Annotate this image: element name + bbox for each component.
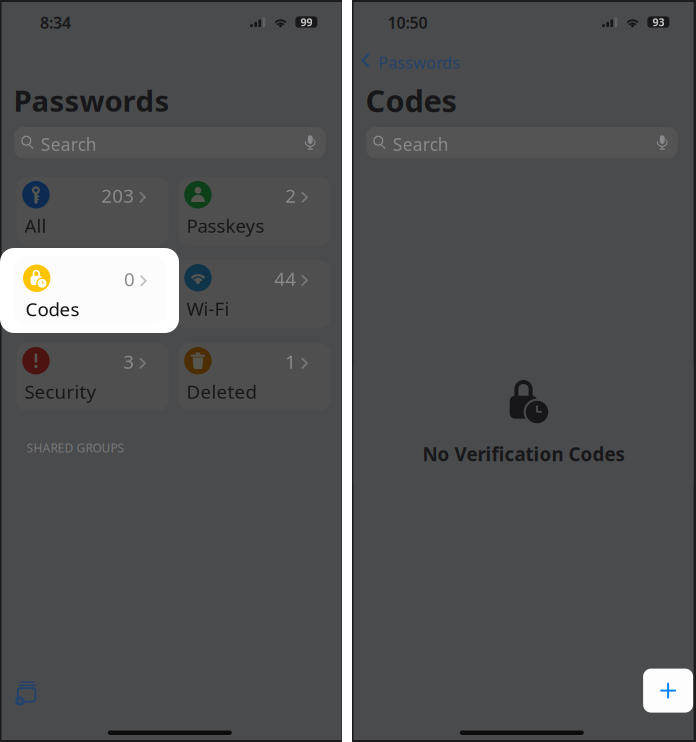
button[interactable]: New shared group xyxy=(15,679,45,709)
staticText: No Verification Codes xyxy=(423,442,625,466)
button[interactable]: 44 xyxy=(179,260,331,328)
staticText: Security xyxy=(25,379,97,404)
staticText: 10:50 xyxy=(388,12,428,33)
staticText: Deleted xyxy=(187,379,257,404)
staticText: Passwords xyxy=(14,81,170,120)
staticText: Passwords xyxy=(378,52,460,73)
staticText: Search xyxy=(41,133,97,156)
button[interactable]: 203 xyxy=(17,177,169,245)
staticText: Search xyxy=(393,133,449,156)
staticText: 44 xyxy=(274,266,296,291)
staticText: Wi-Fi xyxy=(187,296,230,321)
staticText: Passkeys xyxy=(187,213,265,238)
button[interactable]: 0 xyxy=(13,256,165,324)
staticText: 1 xyxy=(285,349,296,374)
staticText: 2 xyxy=(285,183,296,208)
button[interactable]: 1 xyxy=(179,343,331,411)
staticText: 8:34 xyxy=(40,12,71,33)
staticText: All xyxy=(25,213,47,238)
button[interactable]: 2 xyxy=(179,177,331,245)
staticText: 99 xyxy=(300,15,312,29)
button[interactable]: Passwords xyxy=(361,52,471,74)
button[interactable]: Add verification code xyxy=(643,669,693,713)
staticText: 203 xyxy=(101,183,134,208)
staticText: Codes xyxy=(366,80,457,121)
button[interactable]: 3 xyxy=(17,343,169,411)
staticText: 0 xyxy=(124,267,135,291)
staticText: 3 xyxy=(123,349,134,374)
staticText: Codes xyxy=(25,296,79,321)
staticText: 93 xyxy=(652,15,664,29)
staticText: SHARED GROUPS xyxy=(27,440,125,456)
